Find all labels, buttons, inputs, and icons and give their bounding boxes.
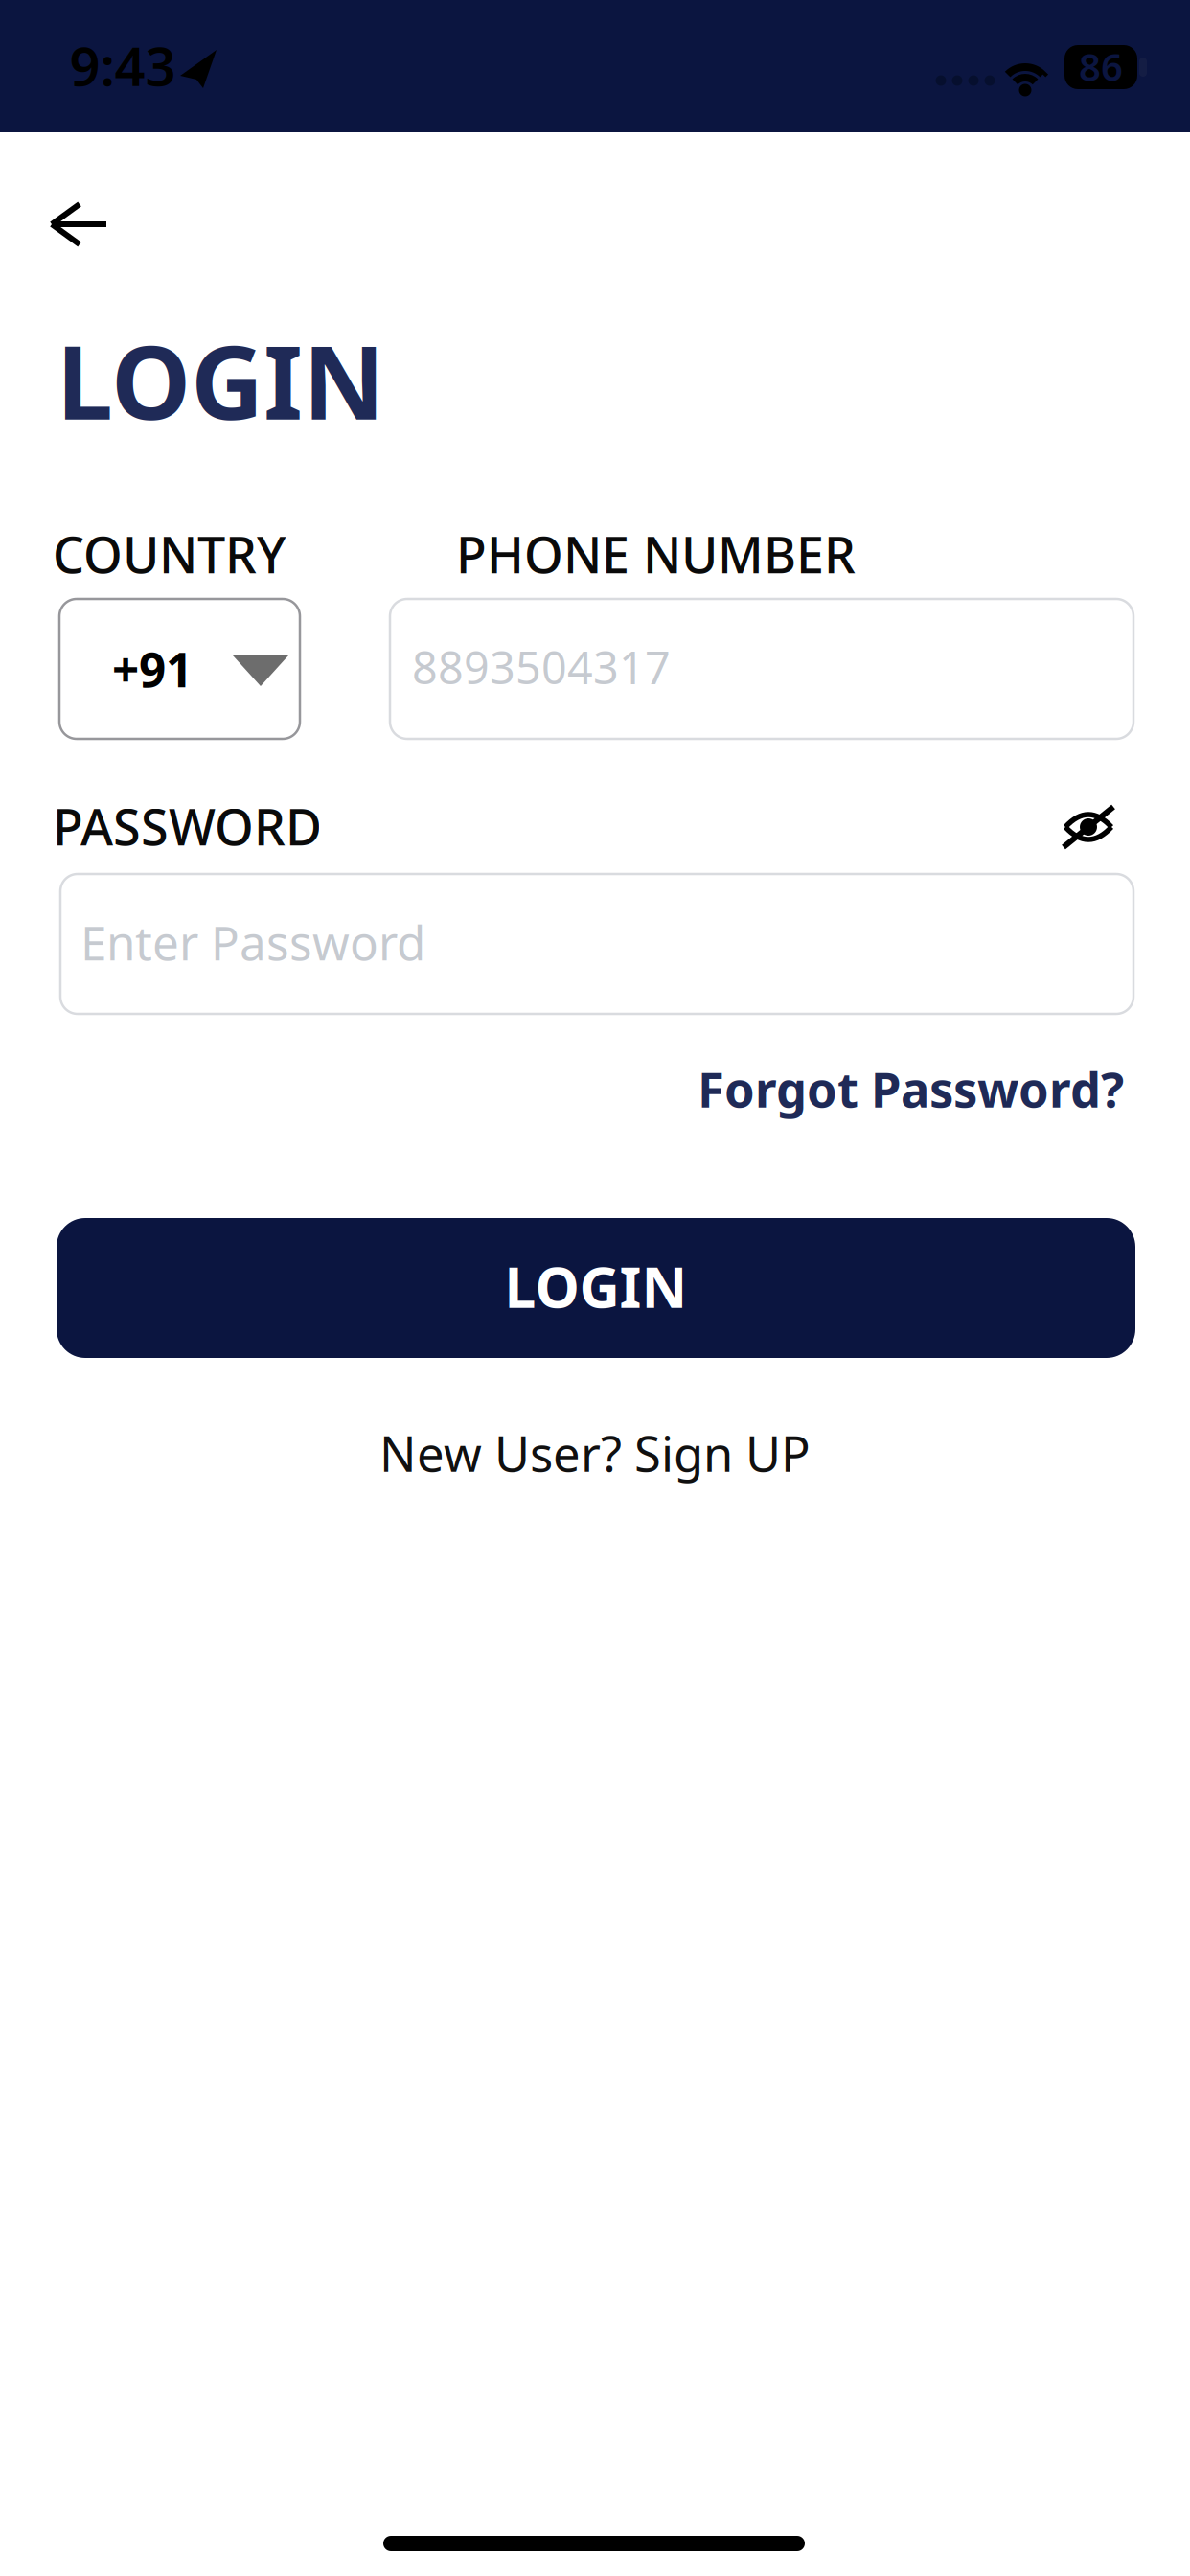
staticText: Enter Password <box>80 911 425 973</box>
button[interactable]: Forgot Password? <box>698 1056 1124 1121</box>
button[interactable]: New User? Sign UP <box>379 1421 811 1485</box>
button[interactable] <box>1062 803 1115 851</box>
button[interactable]: +91 <box>59 599 300 739</box>
button[interactable]: LOGIN <box>57 1218 1135 1358</box>
staticText: LOGIN <box>504 1249 687 1323</box>
staticText: New User? Sign UP <box>379 1421 811 1485</box>
staticText: LOGIN <box>57 313 385 448</box>
staticText: 8893504317 <box>412 637 671 697</box>
staticText: 86 <box>1079 41 1123 92</box>
staticText: PHONE NUMBER <box>456 521 856 587</box>
staticText: COUNTRY <box>53 521 286 587</box>
staticText: PASSWORD <box>53 793 322 859</box>
staticText: +91 <box>112 637 193 700</box>
staticText: Forgot Password? <box>698 1056 1124 1121</box>
staticText: 9:43 <box>69 30 176 101</box>
button[interactable] <box>25 176 130 272</box>
